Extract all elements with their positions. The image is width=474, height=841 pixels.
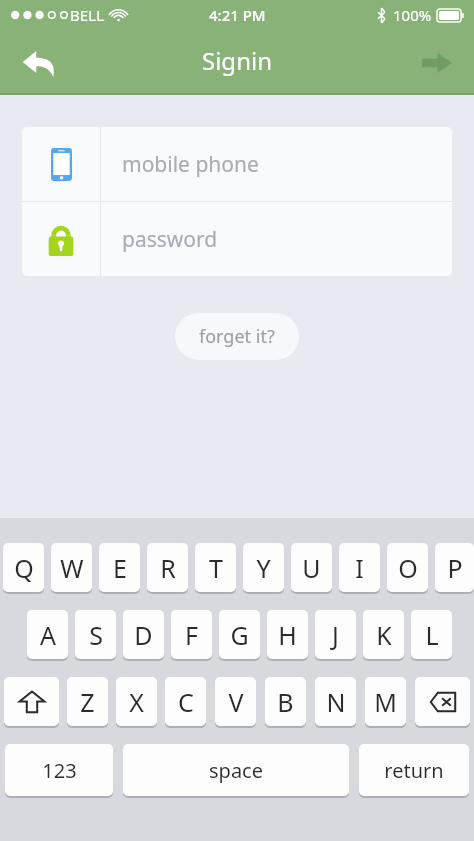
button[interactable]: P: [435, 543, 474, 592]
button[interactable]: Shift: [4, 677, 59, 726]
button[interactable]: R: [147, 543, 188, 592]
button[interactable]: L: [411, 610, 452, 659]
staticText: U: [302, 551, 321, 585]
staticText: G: [230, 618, 249, 652]
staticText: space: [209, 757, 263, 784]
button[interactable]: W: [51, 543, 92, 592]
staticText: Y: [256, 551, 271, 585]
button[interactable]: Next: [408, 34, 466, 92]
button[interactable]: Z: [67, 677, 108, 726]
button[interactable]: S: [75, 610, 116, 659]
staticText: S: [89, 618, 103, 652]
staticText: A: [40, 618, 56, 652]
staticText: BELL: [70, 5, 104, 25]
staticText: 4:21 PM: [209, 5, 266, 25]
staticText: L: [425, 618, 439, 652]
button[interactable]: M: [365, 677, 406, 726]
staticText: mobile phone: [122, 150, 259, 179]
staticText: forget it?: [199, 324, 275, 349]
staticText: O: [398, 551, 418, 585]
button[interactable]: mobile phone: [22, 127, 452, 201]
staticText: X: [129, 685, 144, 719]
button[interactable]: G: [219, 610, 260, 659]
staticText: P: [447, 551, 463, 585]
staticText: Z: [80, 685, 95, 719]
button[interactable]: F: [171, 610, 212, 659]
staticText: T: [209, 551, 223, 585]
staticText: N: [326, 685, 346, 719]
button[interactable]: N: [315, 677, 356, 726]
button[interactable]: D: [123, 610, 164, 659]
staticText: C: [178, 685, 194, 719]
button[interactable]: forget it?: [175, 313, 299, 360]
button[interactable]: 123: [5, 744, 113, 796]
button[interactable]: Back: [8, 34, 70, 92]
staticText: M: [374, 685, 397, 719]
button[interactable]: password: [22, 202, 452, 276]
staticText: F: [185, 618, 198, 652]
staticText: 100%: [393, 5, 432, 25]
button[interactable]: Q: [3, 543, 44, 592]
button[interactable]: B: [265, 677, 306, 726]
staticText: I: [355, 551, 364, 585]
button[interactable]: K: [363, 610, 404, 659]
button[interactable]: X: [116, 677, 157, 726]
staticText: return: [384, 757, 444, 784]
staticText: V: [228, 685, 244, 719]
button[interactable]: E: [99, 543, 140, 592]
button[interactable]: A: [27, 610, 68, 659]
staticText: Q: [14, 551, 34, 585]
button[interactable]: return: [359, 744, 469, 796]
staticText: H: [278, 618, 297, 652]
staticText: E: [113, 551, 127, 585]
staticText: Signin: [202, 44, 272, 77]
button[interactable]: V: [215, 677, 256, 726]
staticText: K: [376, 618, 392, 652]
staticText: W: [60, 551, 84, 585]
button[interactable]: T: [195, 543, 236, 592]
staticText: D: [134, 618, 153, 652]
button[interactable]: space: [123, 744, 349, 796]
staticText: J: [332, 618, 339, 652]
button[interactable]: J: [315, 610, 356, 659]
button[interactable]: C: [165, 677, 206, 726]
button[interactable]: I: [339, 543, 380, 592]
button[interactable]: H: [267, 610, 308, 659]
button[interactable]: U: [291, 543, 332, 592]
staticText: R: [160, 551, 176, 585]
staticText: 123: [42, 757, 77, 784]
button[interactable]: Y: [243, 543, 284, 592]
button[interactable]: O: [387, 543, 428, 592]
button[interactable]: Delete: [415, 677, 470, 726]
staticText: B: [277, 685, 294, 719]
staticText: password: [122, 225, 218, 254]
